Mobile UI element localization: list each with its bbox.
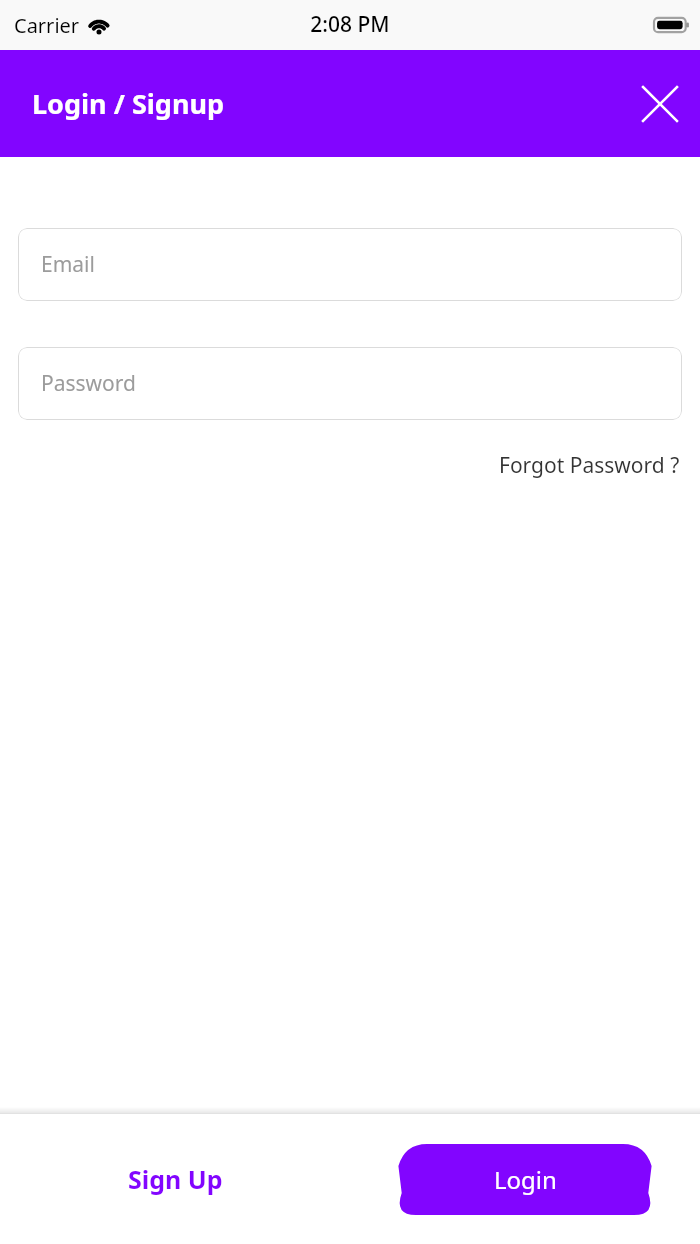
staticText: Carrier <box>14 12 80 39</box>
staticText: Forgot Password ? <box>499 451 680 480</box>
staticText: Login / Signup <box>32 85 225 122</box>
button[interactable]: Login <box>394 1144 656 1215</box>
staticText: 2:08 PM <box>310 10 390 39</box>
staticText: Password <box>41 369 136 398</box>
button[interactable]: Email <box>18 228 682 301</box>
button[interactable]: Forgot Password ? <box>497 448 682 483</box>
staticText: Email <box>41 250 95 279</box>
button[interactable]: Password <box>18 347 682 420</box>
staticText: Login <box>494 1163 557 1196</box>
staticText: Sign Up <box>128 1162 223 1196</box>
button[interactable]: Sign Up <box>114 1152 237 1206</box>
button[interactable]: Close <box>634 78 686 130</box>
